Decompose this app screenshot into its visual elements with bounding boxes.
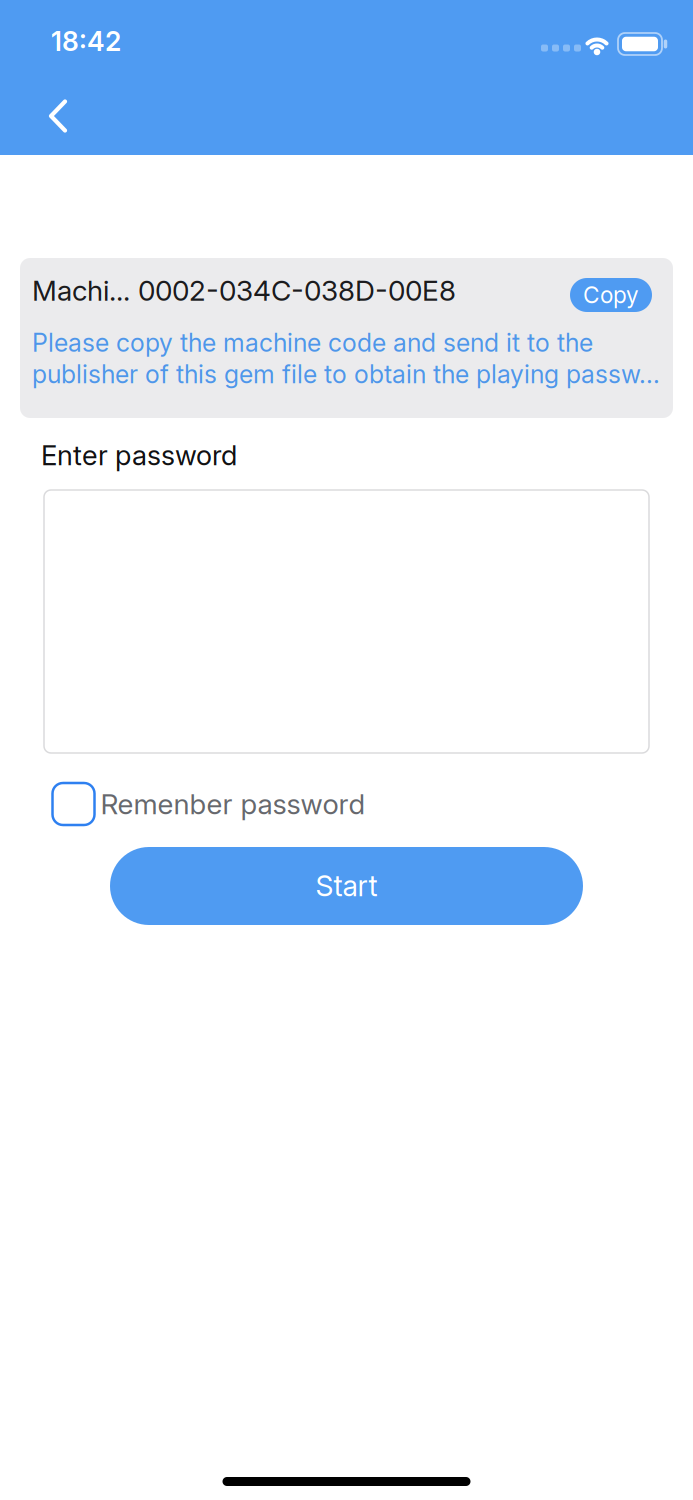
staticText: Copy — [583, 282, 639, 308]
staticText: Enter password — [41, 439, 237, 471]
staticText: Machi... 0002-034C-038D-00E8 — [32, 274, 456, 307]
staticText: 18:42 — [51, 25, 121, 57]
button[interactable]: Copy — [570, 278, 652, 312]
staticText: Remenber password — [100, 787, 365, 820]
button[interactable]: Start — [110, 847, 583, 925]
staticText: Please copy the machine code and send it… — [32, 328, 660, 389]
staticText: Start — [315, 869, 377, 903]
button[interactable]: Back — [37, 87, 79, 144]
button[interactable]: Remenber password — [52, 783, 365, 825]
